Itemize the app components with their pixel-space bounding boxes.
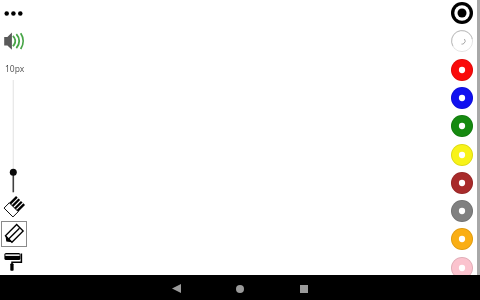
button[interactable]: Colour 9 xyxy=(451,228,473,250)
button[interactable]: Colour 1 xyxy=(451,2,473,24)
button[interactable]: Colour 2 xyxy=(451,30,473,52)
button[interactable]: Colour 10 xyxy=(451,257,473,279)
button[interactable]: Colour 5 xyxy=(451,115,473,137)
button[interactable]: Back xyxy=(152,275,200,300)
button[interactable]: Colour 3 xyxy=(451,59,473,81)
button[interactable]: Colour 4 xyxy=(451,87,473,109)
button[interactable]: Home xyxy=(216,275,264,300)
button[interactable]: Eraser xyxy=(4,196,25,217)
button[interactable]: Colour 6 xyxy=(451,144,473,166)
button[interactable]: Pencil xyxy=(1,221,27,247)
button[interactable]: More options xyxy=(1,5,27,22)
button[interactable]: Recents xyxy=(280,275,328,300)
staticText: 10px xyxy=(5,63,25,75)
button[interactable]: Colour 8 xyxy=(451,200,473,222)
button[interactable]: Fill xyxy=(0,250,24,272)
button[interactable]: Brush size xyxy=(6,78,21,196)
button[interactable]: Sound xyxy=(0,30,26,52)
button[interactable]: Colour 7 xyxy=(451,172,473,194)
